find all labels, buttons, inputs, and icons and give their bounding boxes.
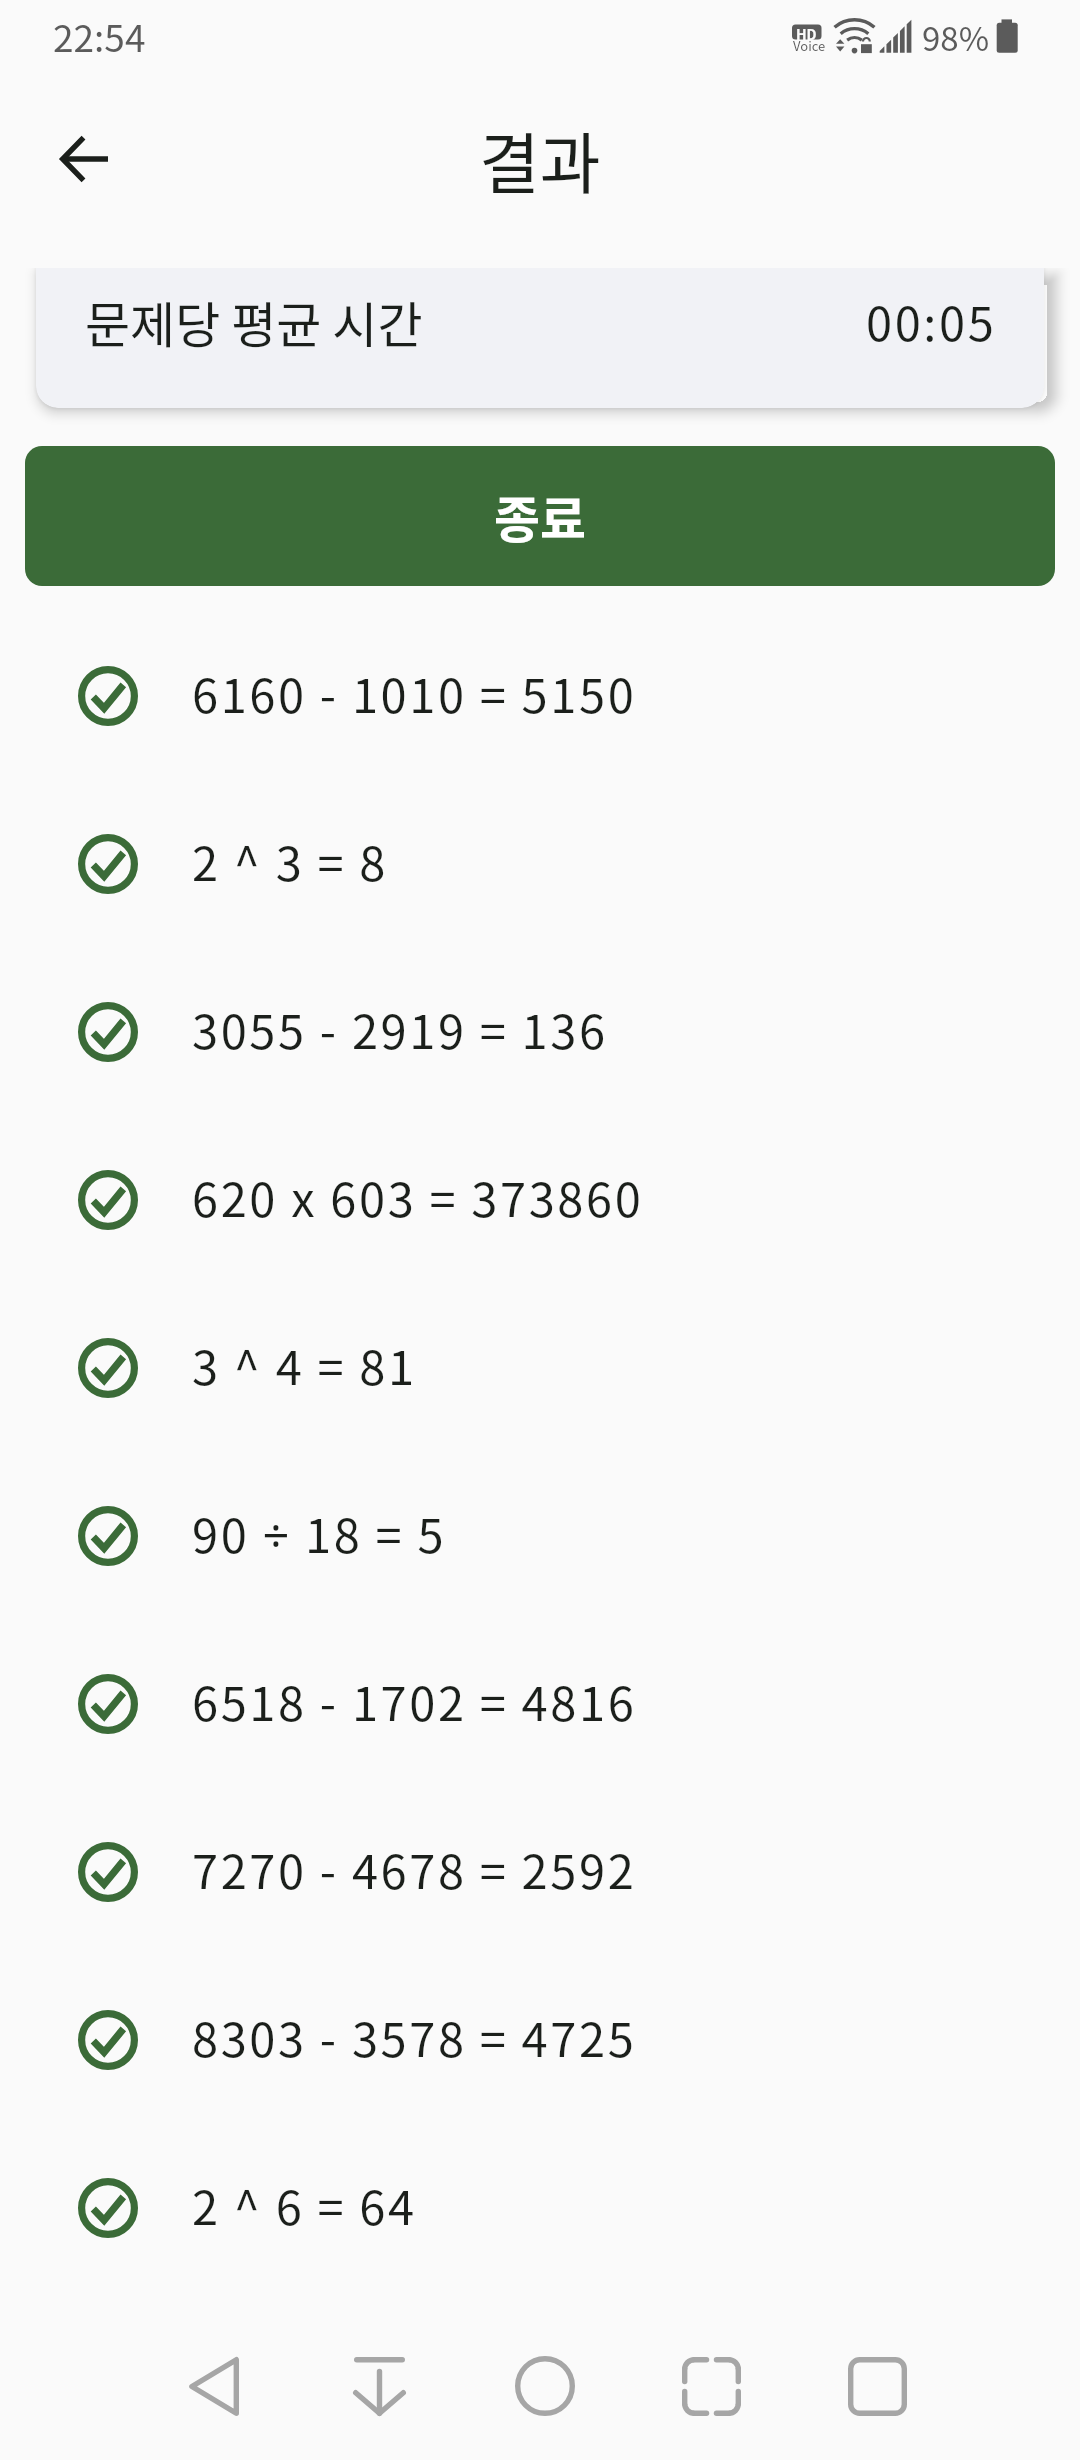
staticText: 3055 - 2919 = 136: [192, 994, 608, 1062]
staticText: 문제당 평균 시간: [85, 286, 423, 357]
button[interactable]: Back: [36, 111, 132, 207]
staticText: 620 x 603 = 373860: [192, 1162, 644, 1230]
button[interactable]: 2 ^ 3 = 8: [0, 780, 1080, 948]
button[interactable]: Back: [153, 2326, 273, 2446]
button[interactable]: 2 ^ 6 = 64: [0, 2124, 1080, 2292]
button[interactable]: 6160 - 1010 = 5150: [0, 612, 1080, 780]
button[interactable]: 3055 - 2919 = 136: [0, 948, 1080, 1116]
staticText: 90 ÷ 18 = 5: [192, 1498, 447, 1566]
button[interactable]: Screenshot: [651, 2326, 771, 2446]
staticText: HD: [796, 24, 817, 44]
button[interactable]: 90 ÷ 18 = 5: [0, 1452, 1080, 1620]
button[interactable]: 7270 - 4678 = 2592: [0, 1788, 1080, 1956]
staticText: 2 ^ 6 = 64: [192, 2170, 417, 2238]
button[interactable]: 6518 - 1702 = 4816: [0, 1620, 1080, 1788]
staticText: 7270 - 4678 = 2592: [192, 1834, 637, 1902]
button[interactable]: Recent apps: [817, 2326, 937, 2446]
button[interactable]: 8303 - 3578 = 4725: [0, 1956, 1080, 2124]
staticText: 종료: [494, 480, 586, 552]
staticText: 결과: [479, 111, 601, 207]
button[interactable]: Hide keyboard: [319, 2326, 439, 2446]
staticText: 3 ^ 4 = 81: [192, 1330, 417, 1398]
staticText: 98%: [922, 13, 990, 61]
button[interactable]: 3 ^ 4 = 81: [0, 1284, 1080, 1452]
staticText: 00:05: [866, 286, 997, 354]
staticText: 6518 - 1702 = 4816: [192, 1666, 637, 1734]
staticText: 22:54: [53, 9, 146, 63]
staticText: Voice: [793, 36, 826, 55]
button[interactable]: 620 x 603 = 373860: [0, 1116, 1080, 1284]
staticText: 8303 - 3578 = 4725: [192, 2002, 637, 2070]
button[interactable]: Home: [485, 2326, 605, 2446]
staticText: 6160 - 1010 = 5150: [192, 658, 637, 726]
button[interactable]: 종료: [25, 446, 1055, 586]
button[interactable]: 문제당 평균 시간: [36, 268, 1044, 408]
staticText: 2 ^ 3 = 8: [192, 826, 388, 894]
